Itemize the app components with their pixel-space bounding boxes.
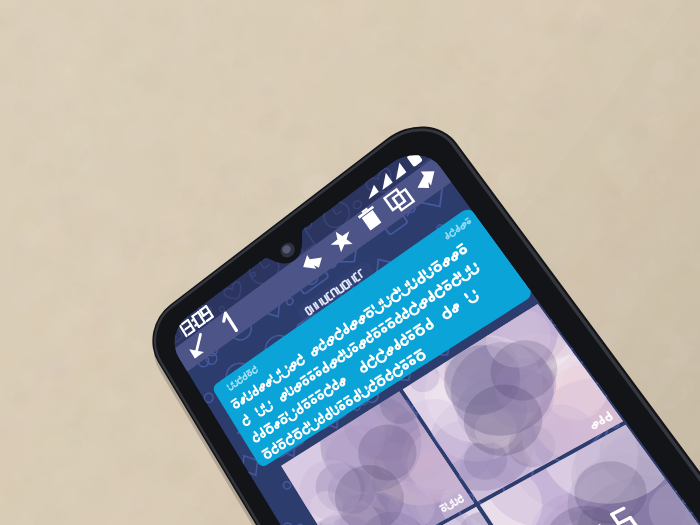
button[interactable]: Star message bbox=[322, 228, 356, 258]
button[interactable]: Copy bbox=[379, 188, 413, 218]
button[interactable]: Reply bbox=[292, 249, 326, 279]
button[interactable]: Back bbox=[170, 335, 206, 365]
button[interactable]: Forwarded message bbox=[205, 330, 455, 460]
button[interactable]: Delete bbox=[352, 207, 386, 237]
button[interactable]: Forward bbox=[405, 169, 439, 199]
